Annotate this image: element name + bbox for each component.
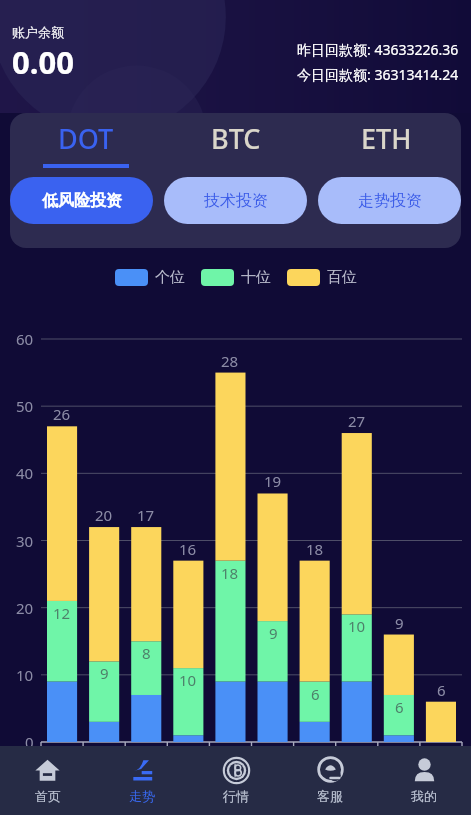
staticText: 个位 (155, 268, 185, 287)
staticText: 10 (348, 616, 366, 636)
button[interactable]: 客服 (283, 746, 377, 815)
staticText: 9 (395, 613, 404, 633)
button[interactable]: 行情 (189, 746, 283, 815)
staticText: 30 (16, 531, 34, 551)
button[interactable]: ETH (311, 120, 461, 168)
staticText: 8 (142, 643, 151, 663)
button[interactable]: DOT (10, 120, 161, 168)
staticText: 18 (221, 563, 239, 583)
staticText: 9 (269, 623, 278, 643)
button[interactable]: 首页 (0, 746, 95, 815)
button[interactable]: 技术投资 (164, 177, 307, 224)
staticText: 9 (100, 663, 109, 683)
staticText: 50 (16, 396, 34, 416)
staticText: 18 (306, 539, 324, 559)
staticText: 16 (179, 539, 197, 559)
staticText: 0 (437, 744, 446, 764)
staticText: 0 (25, 732, 34, 752)
staticText: 低风险投资 (42, 191, 122, 211)
staticText: 6 (311, 684, 320, 704)
staticText: 27 (348, 411, 366, 431)
staticText: 0.00 (12, 41, 74, 83)
staticText: 技术投资 (204, 191, 268, 211)
staticText: 今日回款额: 36313414.24 (297, 65, 459, 84)
staticText: BTC (211, 120, 261, 157)
staticText: 6 (437, 680, 446, 700)
staticText: 17 (137, 505, 155, 525)
staticText: 6 (395, 697, 404, 717)
staticText: 账户余额 (12, 24, 64, 40)
staticText: 我的 (411, 788, 437, 804)
staticText: 28 (221, 351, 239, 371)
staticText: 26 (53, 404, 71, 424)
staticText: 10 (16, 665, 34, 685)
staticText: 20 (95, 505, 113, 525)
staticText: 40 (16, 463, 34, 483)
button[interactable]: BTC (161, 120, 311, 168)
button[interactable]: 走势 (95, 746, 189, 815)
staticText: 20 (16, 598, 34, 618)
staticText: 十位 (241, 268, 271, 287)
staticText: 走势 (129, 788, 155, 804)
button[interactable]: 我的 (377, 746, 471, 815)
staticText: 百位 (327, 268, 357, 287)
staticText: DOT (58, 120, 114, 157)
staticText: 客服 (317, 788, 343, 804)
button[interactable]: 低风险投资 (10, 177, 153, 224)
staticText: 首页 (35, 788, 61, 804)
staticText: 60 (16, 329, 34, 349)
staticText: 昨日回款额: 43633226.36 (297, 40, 459, 59)
staticText: 行情 (223, 788, 249, 804)
staticText: 10 (179, 670, 197, 690)
staticText: 12 (53, 603, 71, 623)
staticText: 19 (264, 471, 282, 491)
staticText: 走势投资 (358, 191, 422, 211)
staticText: ETH (361, 120, 412, 157)
button[interactable]: 走势投资 (318, 177, 461, 224)
